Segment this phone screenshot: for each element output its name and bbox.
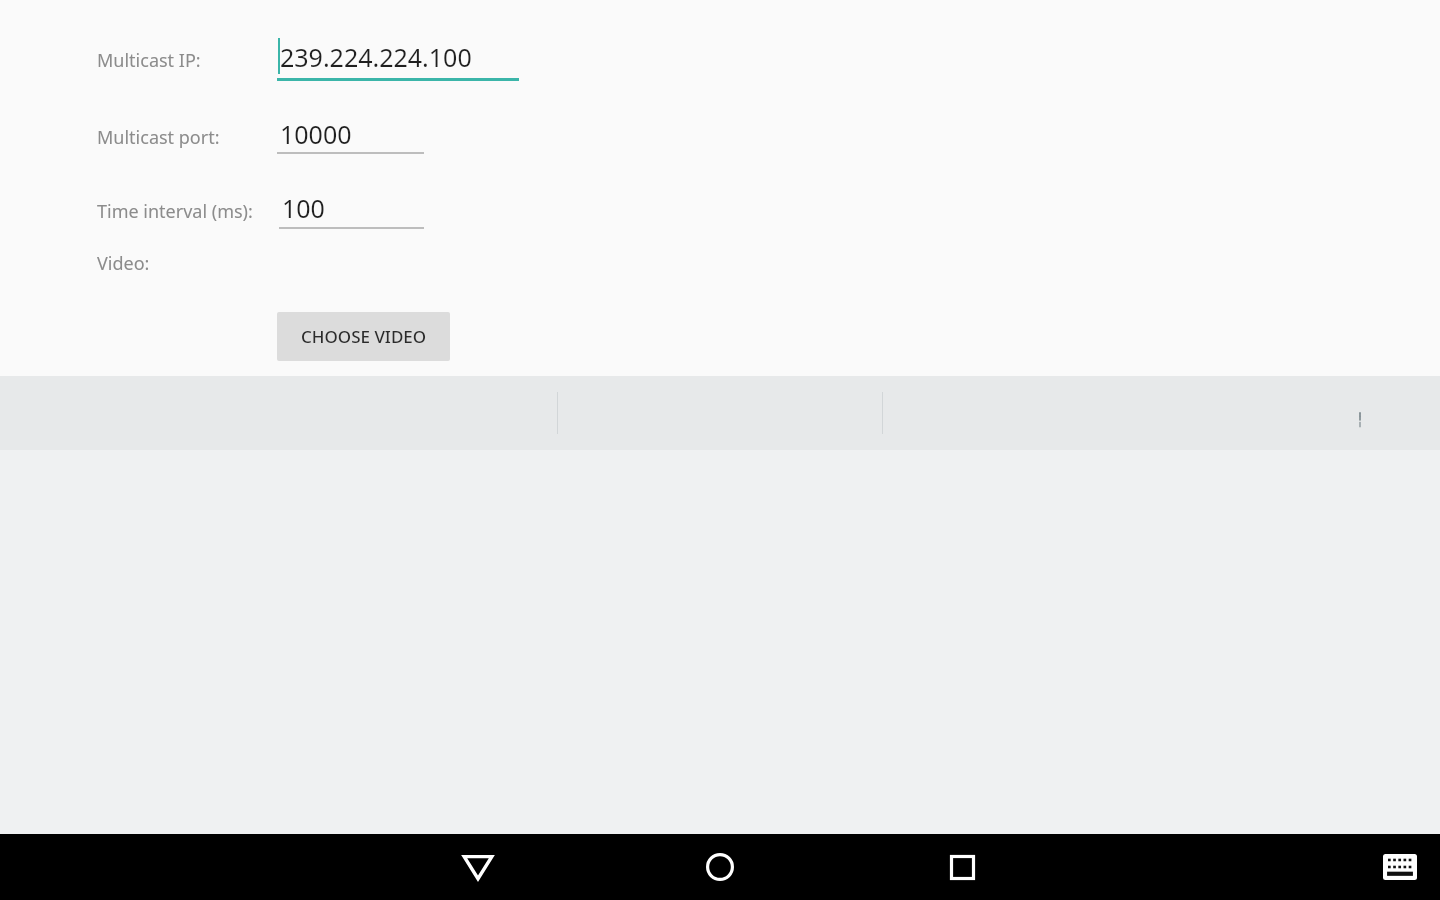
button[interactable]: 239.224.224.100 <box>277 34 519 82</box>
button[interactable]: Switch keyboard <box>1362 834 1438 900</box>
button[interactable]: Home <box>680 834 760 900</box>
staticText: 10000 <box>280 117 352 151</box>
staticText: Multicast port: <box>97 125 220 150</box>
staticText: Video: <box>97 251 150 276</box>
staticText: CHOOSE VIDEO <box>301 325 427 348</box>
staticText: Time interval (ms): <box>97 199 253 224</box>
button[interactable]: CHOOSE VIDEO <box>277 312 450 361</box>
staticText: 100 <box>282 191 325 225</box>
button[interactable]: Back <box>438 834 518 900</box>
button[interactable]: Recents <box>922 834 1002 900</box>
button[interactable]: 10000 <box>277 112 424 156</box>
staticText: 239.224.224.100 <box>280 40 472 74</box>
staticText: Multicast IP: <box>97 48 201 73</box>
button[interactable]: 100 <box>279 187 424 231</box>
